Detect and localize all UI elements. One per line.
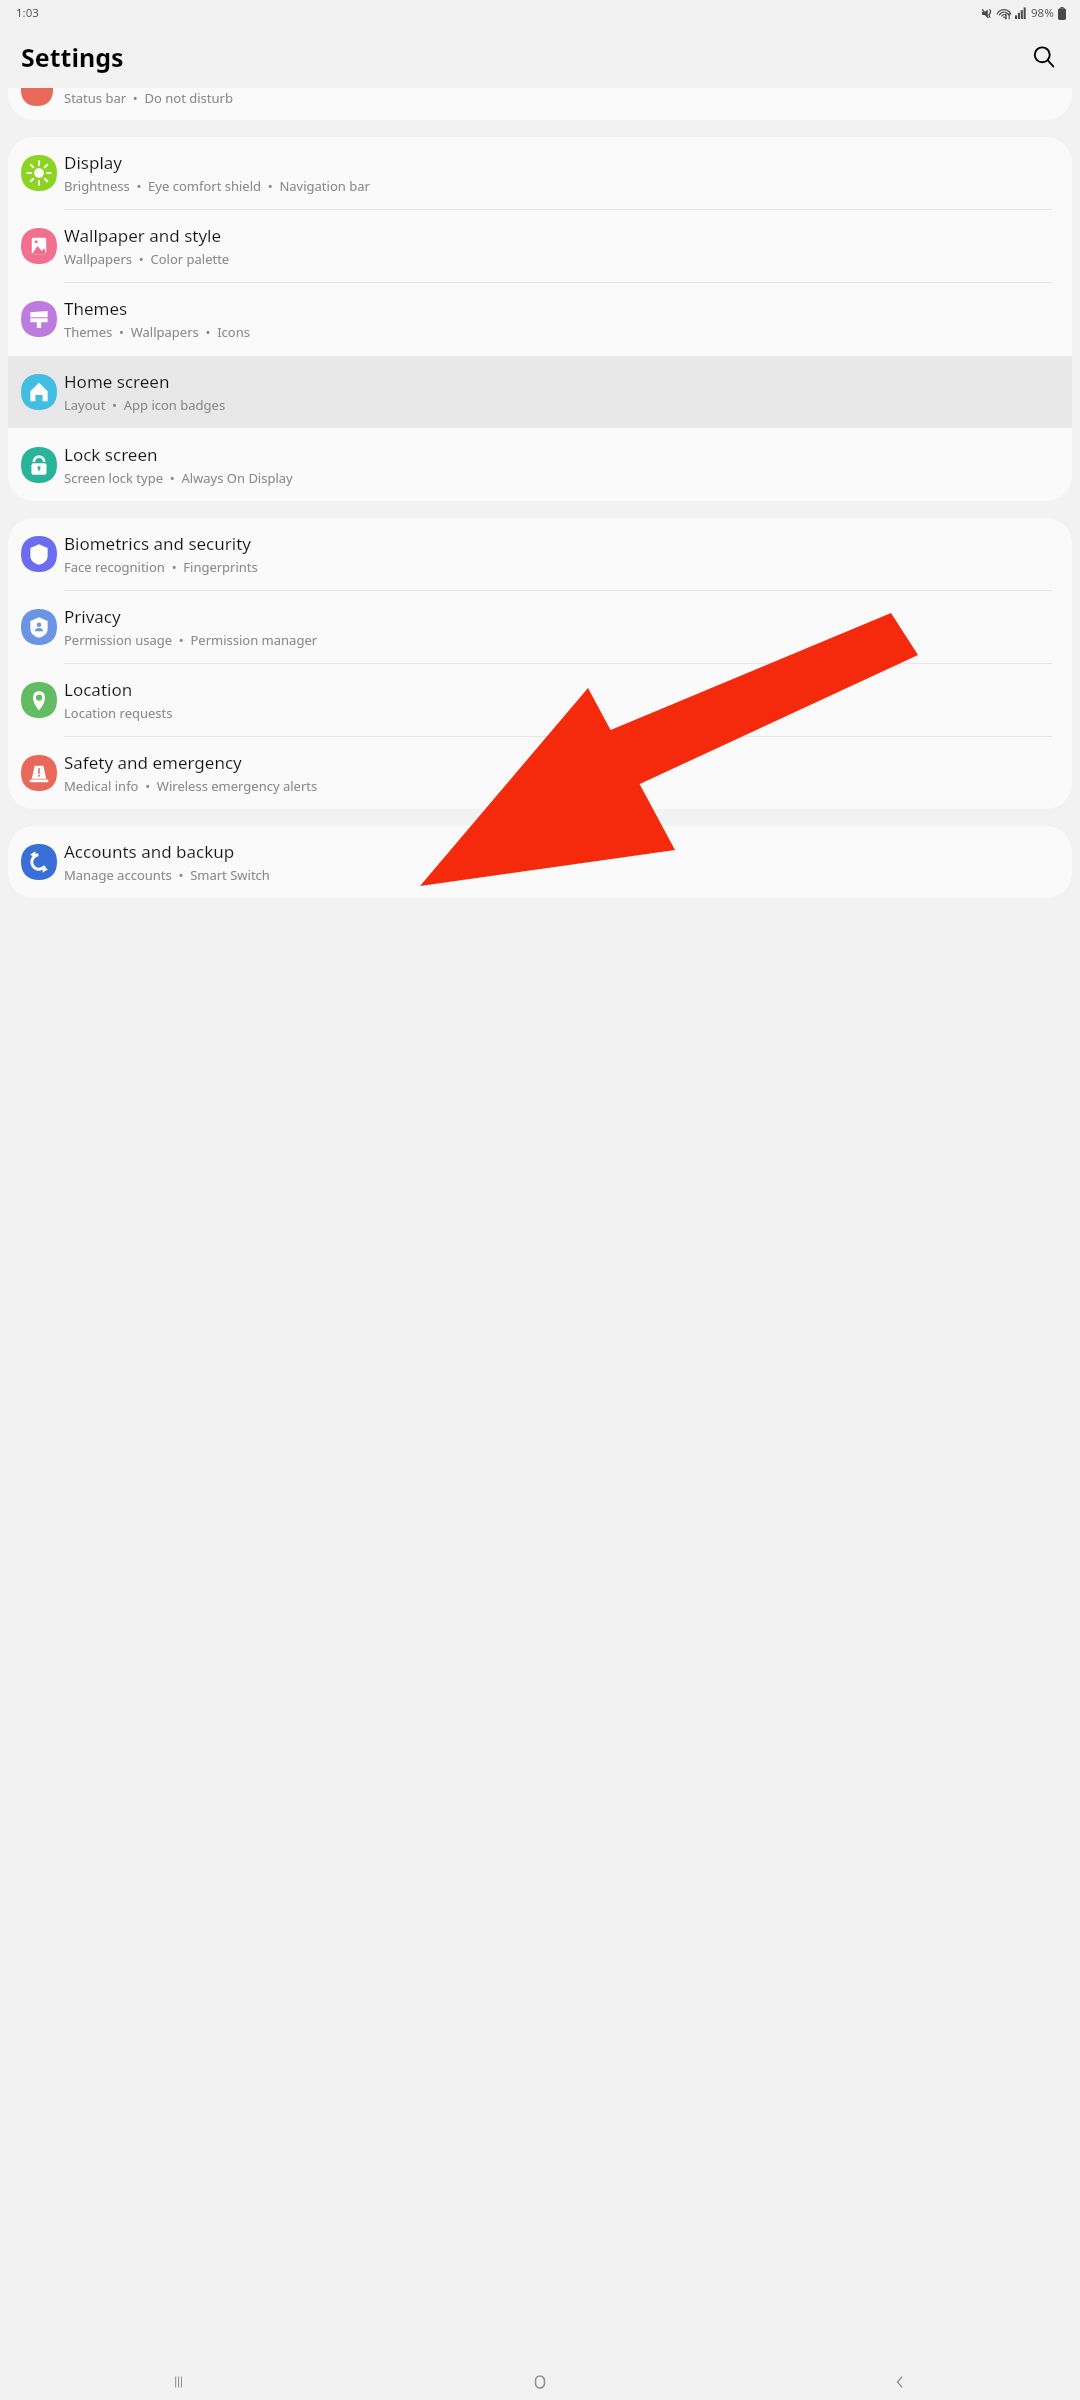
button[interactable]: Back bbox=[720, 2364, 1080, 2400]
button[interactable]: Biometrics and security bbox=[8, 518, 1072, 590]
button[interactable]: Display bbox=[8, 137, 1072, 209]
button[interactable]: Accounts and backup bbox=[8, 826, 1072, 898]
staticText: Accounts and backup bbox=[64, 840, 235, 863]
staticText: Settings bbox=[21, 40, 124, 74]
staticText: Themes bbox=[64, 297, 128, 320]
staticText: Home screen bbox=[64, 370, 170, 393]
button[interactable]: Safety and emergency bbox=[8, 737, 1072, 809]
button[interactable]: Location bbox=[8, 664, 1072, 736]
staticText: Biometrics and security bbox=[64, 532, 251, 555]
staticText: Location bbox=[64, 678, 133, 701]
staticText: Layout • App icon badges bbox=[64, 396, 226, 414]
staticText: 98% bbox=[1031, 5, 1054, 21]
button[interactable]: Search settings bbox=[1024, 37, 1064, 77]
staticText: 1:03 bbox=[16, 5, 39, 21]
button[interactable]: Home screen bbox=[8, 356, 1072, 428]
staticText: Lock screen bbox=[64, 443, 158, 466]
button[interactable]: Recent apps bbox=[0, 2364, 360, 2400]
staticText: Themes • Wallpapers • Icons bbox=[64, 323, 250, 341]
staticText: Manage accounts • Smart Switch bbox=[64, 866, 270, 884]
staticText: Privacy bbox=[64, 605, 121, 628]
staticText: Permission usage • Permission manager bbox=[64, 631, 318, 649]
staticText: Status bar • Do not disturb bbox=[64, 89, 233, 107]
staticText: Display bbox=[64, 151, 122, 174]
button[interactable]: Wallpaper and style bbox=[8, 210, 1072, 282]
button[interactable]: Status bar • Do not disturb bbox=[8, 88, 1072, 120]
button[interactable]: Home bbox=[360, 2364, 720, 2400]
staticText: Brightness • Eye comfort shield • Naviga… bbox=[64, 177, 370, 195]
staticText: Safety and emergency bbox=[64, 751, 242, 774]
staticText: Screen lock type • Always On Display bbox=[64, 469, 293, 487]
staticText: Medical info • Wireless emergency alerts bbox=[64, 777, 318, 795]
button[interactable]: Privacy bbox=[8, 591, 1072, 663]
staticText: Wallpaper and style bbox=[64, 224, 222, 247]
staticText: Location requests bbox=[64, 704, 173, 722]
staticText: Wallpapers • Color palette bbox=[64, 250, 230, 268]
button[interactable]: Lock screen bbox=[8, 429, 1072, 501]
button[interactable]: Themes bbox=[8, 283, 1072, 355]
staticText: Face recognition • Fingerprints bbox=[64, 558, 258, 576]
